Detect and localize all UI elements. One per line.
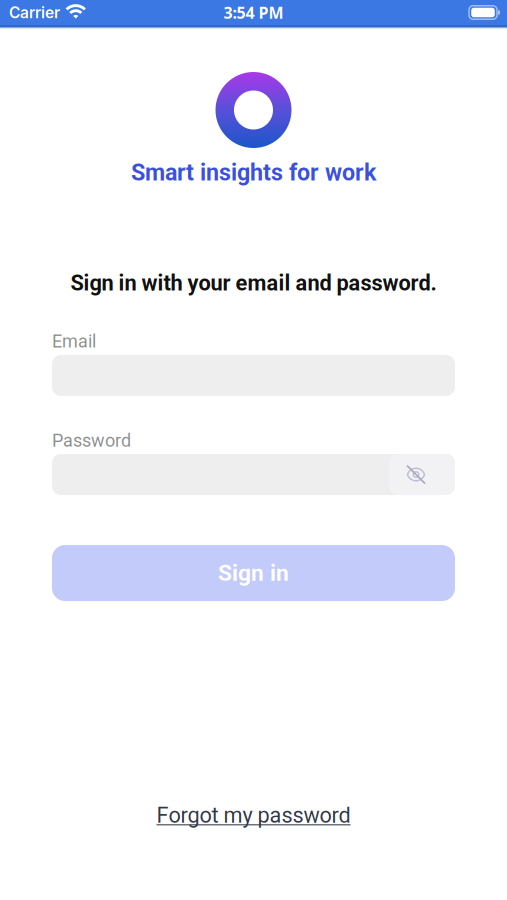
staticText: Smart insights for work	[131, 159, 376, 186]
button[interactable]: Forgot my password	[156, 803, 350, 828]
staticText: Email	[52, 331, 96, 352]
staticText: Carrier	[9, 3, 60, 22]
button[interactable]: Sign in	[52, 545, 455, 601]
staticText: Sign in	[218, 560, 289, 586]
staticText: 3:54 PM	[223, 2, 283, 23]
staticText: Password	[52, 430, 131, 451]
button[interactable]: Show password	[377, 454, 455, 495]
staticText: Forgot my password	[156, 803, 350, 828]
button[interactable]: Password	[52, 454, 455, 495]
staticText: Sign in with your email and password.	[70, 270, 436, 296]
